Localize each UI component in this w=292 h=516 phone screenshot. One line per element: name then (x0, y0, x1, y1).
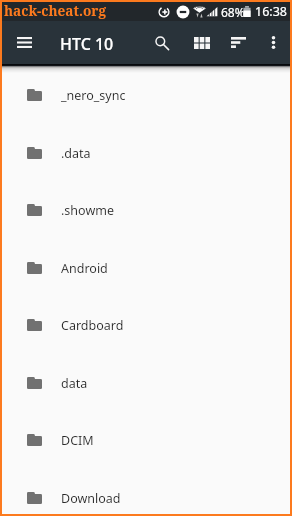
staticText: Android (61, 260, 108, 277)
button[interactable]: Grid view (183, 21, 221, 64)
button[interactable]: Navigation menu (1, 21, 47, 64)
staticText: data (61, 375, 88, 392)
button[interactable]: .showme (2, 181, 290, 238)
staticText: HTC 10 (60, 33, 114, 55)
staticText: 68% (221, 4, 245, 20)
button[interactable]: data (2, 354, 290, 411)
button[interactable]: Search (143, 21, 181, 64)
staticText: _nero_sync (61, 87, 126, 104)
button[interactable]: DCIM (2, 411, 290, 468)
button[interactable]: .data (2, 124, 290, 181)
staticText: .showme (61, 202, 114, 219)
staticText: 16:38 (255, 3, 287, 20)
staticText: Download (61, 490, 121, 507)
staticText: DCIM (61, 432, 94, 449)
button[interactable]: Sort (219, 21, 257, 64)
button[interactable]: Download (2, 469, 290, 516)
button[interactable]: Cardboard (2, 296, 290, 353)
button[interactable]: More options (256, 21, 290, 64)
staticText: hack-cheat.org (4, 1, 106, 20)
button[interactable]: Android (2, 239, 290, 296)
staticText: Cardboard (61, 317, 124, 334)
staticText: .data (61, 145, 91, 162)
button[interactable]: _nero_sync (2, 66, 290, 123)
